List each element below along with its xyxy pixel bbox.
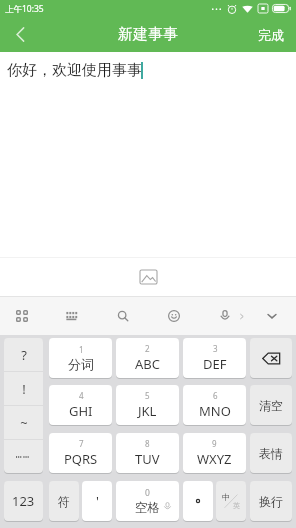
staticText: 清空	[259, 398, 283, 413]
staticText: 5	[145, 390, 150, 401]
button[interactable]: 4	[49, 385, 112, 425]
staticText: 英	[233, 501, 240, 510]
button[interactable]: 符	[49, 481, 79, 521]
button[interactable]: ?	[4, 338, 43, 371]
button[interactable]: !	[4, 372, 43, 405]
button[interactable]: Switch Chinese English	[216, 481, 246, 521]
button[interactable]: 3	[183, 338, 246, 378]
staticText: 换行	[259, 494, 283, 509]
button[interactable]: Emoji	[158, 300, 190, 332]
staticText: GHI	[69, 402, 93, 420]
staticText: !	[22, 380, 26, 398]
button[interactable]: Back	[0, 17, 40, 52]
staticText: DEF	[203, 355, 227, 373]
staticText: 3	[213, 343, 218, 354]
staticText: 123	[12, 492, 35, 510]
staticText: TUV	[135, 450, 160, 468]
staticText: ~	[20, 414, 28, 432]
staticText: 空格	[135, 500, 160, 516]
staticText: 6	[213, 390, 218, 401]
button[interactable]: 完成	[246, 17, 296, 52]
button[interactable]: Insert image	[132, 261, 164, 293]
button[interactable]: Backspace	[250, 338, 292, 378]
staticText: 7	[79, 438, 84, 449]
staticText: 2	[145, 343, 150, 354]
button[interactable]: 9	[183, 433, 246, 473]
staticText: ABC	[135, 355, 160, 373]
staticText: 上午10:35	[5, 3, 44, 15]
button[interactable]: 8	[116, 433, 179, 473]
button[interactable]: 清空	[250, 385, 292, 425]
staticText: WXYZ	[197, 450, 232, 468]
staticText: PQRS	[64, 450, 98, 468]
button[interactable]: 换行	[250, 481, 292, 521]
staticText: 新建事事	[118, 25, 178, 44]
button[interactable]: 2	[116, 338, 179, 378]
button[interactable]: 123	[4, 481, 43, 521]
button[interactable]: More symbols	[4, 440, 43, 473]
staticText: JKL	[138, 402, 157, 420]
button[interactable]: Apps	[6, 300, 38, 332]
staticText: 0	[145, 487, 150, 499]
button[interactable]: 表情	[250, 433, 292, 473]
button[interactable]: 0	[116, 481, 179, 521]
button[interactable]: Switch keyboard	[56, 300, 88, 332]
button[interactable]: Hide keyboard	[256, 300, 288, 332]
button[interactable]: Voice input	[209, 300, 241, 332]
staticText: 你好，欢迎使用事事	[7, 61, 142, 80]
button[interactable]: 6	[183, 385, 246, 425]
staticText: 中	[222, 492, 230, 502]
staticText: 符	[58, 494, 70, 509]
staticText: 分词	[68, 356, 94, 372]
staticText: 完成	[258, 27, 284, 43]
button[interactable]: 7	[49, 433, 112, 473]
button[interactable]: '	[82, 481, 112, 521]
staticText: 4	[79, 390, 84, 401]
button[interactable]: ~	[4, 406, 43, 439]
staticText: ?	[21, 346, 27, 364]
staticText: 9	[212, 438, 217, 449]
button[interactable]: 1	[49, 338, 112, 378]
staticText: 8	[145, 438, 150, 449]
staticText: 1	[79, 344, 84, 355]
button[interactable]: Period	[183, 481, 213, 521]
staticText: '	[96, 492, 99, 510]
staticText: MNO	[199, 402, 231, 420]
button[interactable]: Search	[107, 300, 139, 332]
button[interactable]: 5	[116, 385, 179, 425]
staticText: 表情	[259, 446, 283, 461]
